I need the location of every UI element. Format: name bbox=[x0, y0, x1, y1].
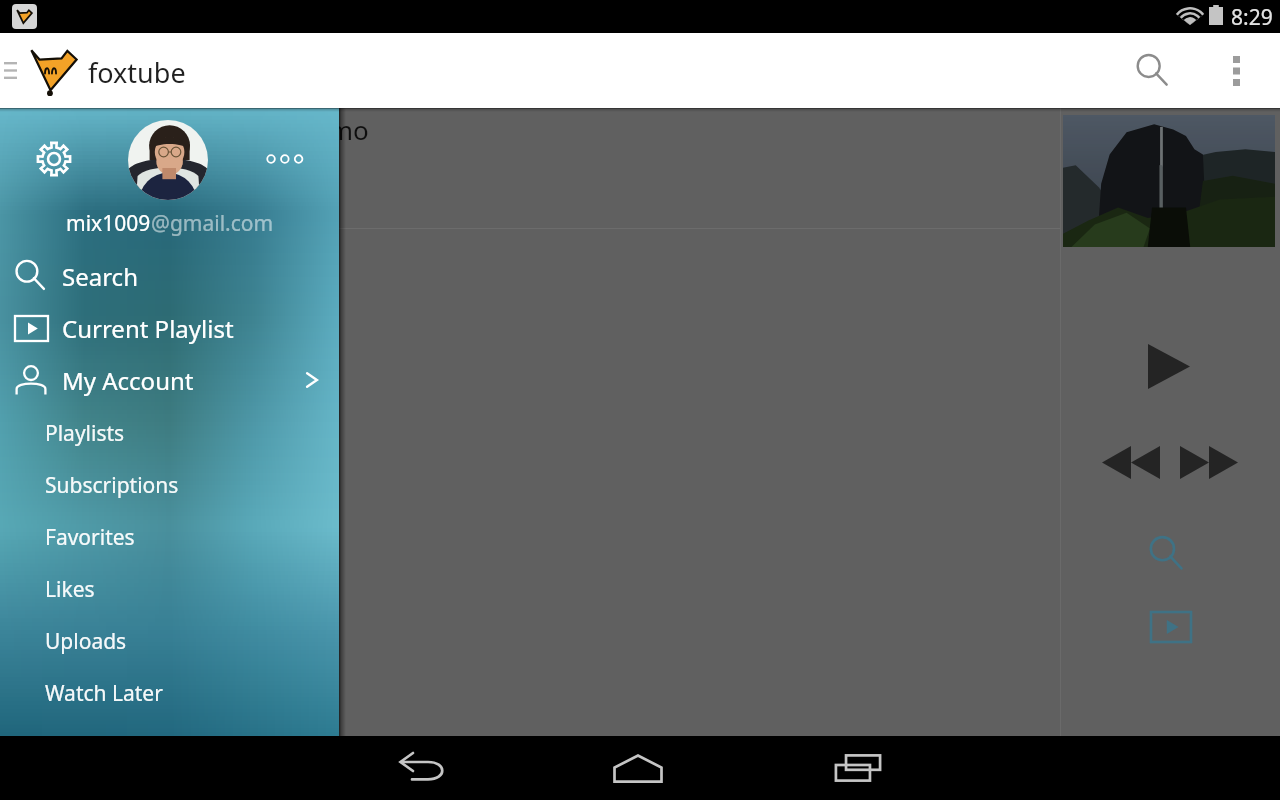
staticText: Subscriptions bbox=[45, 471, 179, 500]
button[interactable]: Open navigation drawer bbox=[0, 33, 20, 108]
button[interactable]: Rewind bbox=[1098, 440, 1164, 484]
button[interactable]: Play bbox=[1145, 340, 1193, 392]
button[interactable]: My Account bbox=[0, 354, 339, 406]
button[interactable]: Subscriptions bbox=[0, 459, 339, 511]
staticText: My Account bbox=[62, 364, 194, 397]
button[interactable]: Recent apps bbox=[794, 736, 922, 800]
button[interactable]: Likes bbox=[0, 563, 339, 615]
button[interactable]: Uploads bbox=[0, 615, 339, 667]
button[interactable]: Settings bbox=[29, 134, 79, 184]
button[interactable]: Search bbox=[0, 250, 339, 302]
staticText: Demo bbox=[295, 112, 369, 147]
button[interactable]: Account avatar bbox=[128, 120, 208, 200]
button[interactable]: Favorites bbox=[0, 511, 339, 563]
staticText: Likes bbox=[45, 575, 95, 604]
button[interactable]: Search bbox=[1139, 526, 1195, 582]
button[interactable]: Current Playlist bbox=[0, 302, 339, 354]
staticText: @gmail.com bbox=[151, 209, 274, 238]
staticText: Uploads bbox=[45, 627, 127, 656]
staticText: foxtube bbox=[88, 54, 186, 91]
staticText: Favorites bbox=[45, 523, 135, 552]
button[interactable]: Home bbox=[574, 736, 702, 800]
button[interactable]: Current playlist bbox=[1147, 606, 1195, 648]
staticText: Playlists bbox=[45, 419, 125, 448]
staticText: Watch Later bbox=[45, 679, 163, 708]
staticText: 8:29 bbox=[1231, 3, 1273, 32]
button[interactable]: Watch Later bbox=[0, 667, 339, 719]
button[interactable]: Account options bbox=[256, 140, 314, 178]
staticText: Search bbox=[62, 260, 138, 293]
button[interactable]: Fast forward bbox=[1176, 440, 1242, 484]
staticText: Current Playlist bbox=[62, 312, 234, 345]
staticText: mix1009 bbox=[66, 209, 151, 238]
button[interactable]: Playlists bbox=[0, 407, 339, 459]
button[interactable]: More options bbox=[1208, 33, 1264, 108]
button[interactable]: Back bbox=[360, 736, 488, 800]
button[interactable]: Search bbox=[1120, 33, 1186, 108]
